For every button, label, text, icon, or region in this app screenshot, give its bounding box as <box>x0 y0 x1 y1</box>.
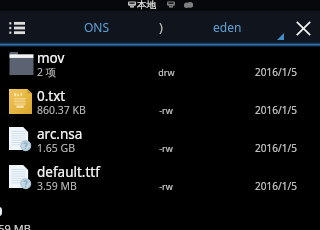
staticText: 0.txt <box>37 87 66 105</box>
button[interactable]: List view <box>3 14 31 42</box>
staticText: 2 项 <box>37 65 57 79</box>
staticText: eden <box>213 19 242 35</box>
staticText: 860.37 KB <box>37 103 86 117</box>
button[interactable]: arc.nsa <box>0 121 320 159</box>
button[interactable]: ONS <box>71 11 123 42</box>
staticText: 3.59 MB <box>0 221 31 230</box>
button[interactable]: default.ttf <box>0 159 320 197</box>
staticText: -rw <box>159 104 173 116</box>
staticText: ) <box>159 18 163 36</box>
staticText: mov <box>37 49 65 67</box>
button[interactable]: 0.txt <box>0 83 320 121</box>
staticText: 1.65 GB <box>37 141 76 155</box>
staticText: 2016/1/5 <box>255 103 297 117</box>
button[interactable]: mov <box>0 45 320 83</box>
staticText: 3.59 MB <box>37 179 77 193</box>
staticText: -rw <box>159 142 173 154</box>
button[interactable]: Close <box>289 14 317 42</box>
button[interactable]: eden <box>199 11 255 42</box>
staticText: drw <box>158 66 175 78</box>
staticText: arc.nsa <box>37 125 83 143</box>
staticText: default.ttf <box>37 163 100 181</box>
staticText: -rw <box>159 180 173 192</box>
staticText: 2016/1/5 <box>255 179 297 193</box>
staticText: 2016/1/5 <box>255 65 297 79</box>
staticText: ONS <box>84 19 110 35</box>
staticText: 2016/1/5 <box>255 141 297 155</box>
staticText: 本地 <box>137 0 156 10</box>
